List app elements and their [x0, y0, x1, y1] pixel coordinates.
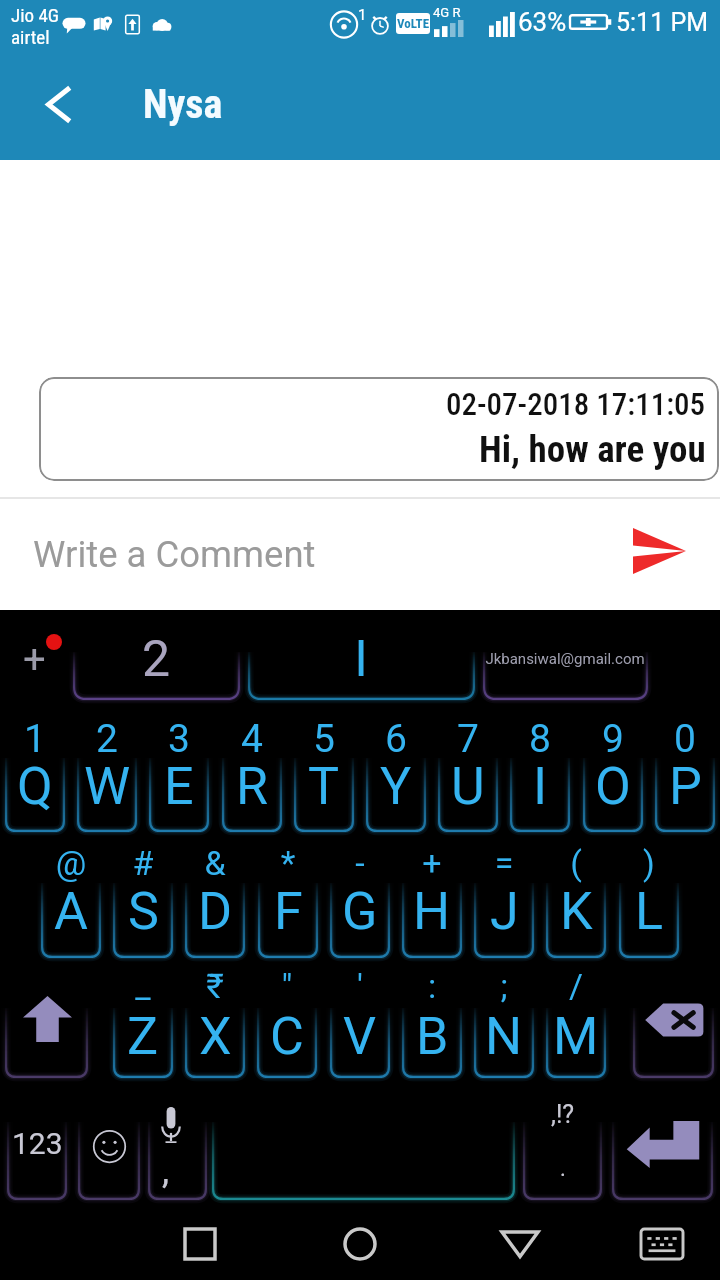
button[interactable]: E: [149, 758, 209, 832]
button[interactable]: I: [510, 758, 570, 832]
staticText: D: [198, 881, 233, 942]
staticText: VoLTE: [397, 16, 430, 31]
button[interactable]: [73, 652, 240, 700]
staticText: +: [402, 843, 462, 883]
button[interactable]: G: [330, 883, 390, 958]
button[interactable]: Backspace: [633, 1008, 714, 1078]
button[interactable]: Q: [5, 758, 65, 832]
staticText: H: [413, 881, 451, 942]
button[interactable]: Numbers: [7, 1122, 67, 1200]
button[interactable]: H: [402, 883, 462, 958]
staticText: airtel: [11, 26, 50, 48]
staticText: Write a Comment: [33, 533, 316, 576]
staticText: 123: [12, 1126, 63, 1161]
staticText: T: [308, 756, 340, 817]
button[interactable]: [483, 652, 648, 700]
staticText: C: [270, 1006, 304, 1067]
staticText: X: [199, 1006, 232, 1067]
button[interactable]: 02-07-2018 17:11:05: [39, 377, 719, 481]
button[interactable]: Show keyboard: [630, 1212, 694, 1276]
staticText: /: [546, 966, 606, 1006]
staticText: Jkbansiwal@gmail.com: [445, 650, 685, 668]
staticText: -: [330, 843, 390, 883]
button[interactable]: X: [185, 1008, 245, 1078]
staticText: Y: [380, 756, 412, 817]
button[interactable]: Back: [488, 1212, 552, 1276]
button[interactable]: D: [185, 883, 245, 958]
staticText: I: [241, 630, 481, 689]
button[interactable]: Emoji: [78, 1122, 140, 1200]
staticText: &: [185, 843, 245, 883]
button[interactable]: W: [77, 758, 137, 832]
button[interactable]: Enter: [612, 1122, 713, 1200]
staticText: 2: [36, 630, 276, 689]
staticText: ': [330, 966, 390, 1006]
button[interactable]: R: [222, 758, 282, 832]
button[interactable]: M: [546, 1008, 606, 1078]
staticText: 02-07-2018 17:11:05: [446, 386, 706, 422]
staticText: Nysa: [143, 81, 223, 128]
button[interactable]: U: [438, 758, 498, 832]
staticText: 4G R: [433, 5, 461, 20]
button[interactable]: S: [113, 883, 173, 958]
button[interactable]: L: [619, 883, 679, 958]
staticText: 63%: [518, 7, 567, 37]
button[interactable]: A: [41, 883, 101, 958]
button[interactable]: K: [546, 883, 606, 958]
staticText: ): [619, 843, 679, 883]
staticText: K: [560, 881, 593, 942]
staticText: =: [474, 843, 534, 883]
button[interactable]: J: [474, 883, 534, 958]
staticText: W: [84, 756, 131, 817]
staticText: 4: [222, 716, 282, 762]
staticText: R: [236, 756, 269, 817]
staticText: P: [669, 756, 702, 817]
staticText: 1: [5, 716, 65, 762]
staticText: J: [490, 881, 519, 942]
staticText: V: [343, 1006, 377, 1067]
staticText: 9: [583, 716, 643, 762]
staticText: L: [635, 881, 664, 942]
button[interactable]: V: [330, 1008, 390, 1078]
staticText: ;: [474, 966, 534, 1006]
staticText: Q: [17, 756, 53, 817]
staticText: 5:11 PM: [616, 8, 709, 37]
button[interactable]: C: [257, 1008, 317, 1078]
staticText: Hi, how are you: [479, 428, 706, 471]
button[interactable]: Back: [30, 76, 86, 132]
staticText: #: [113, 843, 173, 883]
button[interactable]: Shift: [5, 1008, 88, 1078]
button[interactable]: Space: [212, 1122, 515, 1200]
button[interactable]: P: [655, 758, 715, 832]
staticText: I: [533, 756, 548, 817]
staticText: ₹: [185, 966, 245, 1006]
staticText: _: [113, 966, 173, 1006]
button[interactable]: Voice input: [148, 1122, 207, 1200]
staticText: +: [23, 636, 46, 683]
button[interactable]: ,!?: [523, 1122, 602, 1200]
button[interactable]: F: [258, 883, 318, 958]
button[interactable]: [248, 652, 475, 700]
button[interactable]: Recents: [168, 1212, 232, 1276]
button[interactable]: Home: [328, 1212, 392, 1276]
staticText: M: [553, 1006, 599, 1067]
staticText: 7: [438, 716, 498, 762]
button[interactable]: Z: [113, 1008, 173, 1078]
staticText: 1: [358, 6, 367, 24]
staticText: 6: [366, 716, 426, 762]
button[interactable]: Y: [366, 758, 426, 832]
button[interactable]: B: [402, 1008, 462, 1078]
staticText: :: [402, 966, 462, 1006]
staticText: U: [451, 756, 485, 817]
button[interactable]: N: [474, 1008, 534, 1078]
staticText: A: [54, 881, 88, 942]
staticText: E: [164, 756, 194, 817]
staticText: F: [274, 881, 303, 942]
staticText: G: [342, 881, 378, 942]
staticText: 2: [77, 716, 137, 762]
button[interactable]: O: [583, 758, 643, 832]
staticText: ": [257, 966, 317, 1006]
staticText: O: [595, 756, 631, 817]
button[interactable]: T: [294, 758, 354, 832]
button[interactable]: Send: [608, 511, 696, 599]
